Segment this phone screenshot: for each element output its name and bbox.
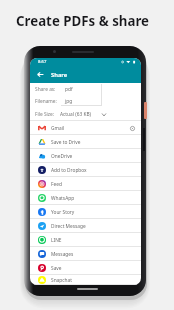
staticText: OneDrive bbox=[51, 153, 73, 160]
staticText: Share bbox=[51, 71, 68, 79]
button[interactable]: Add to Dropbox bbox=[30, 163, 141, 177]
button[interactable]: Back bbox=[34, 68, 47, 81]
staticText: Share as: bbox=[35, 86, 56, 93]
staticText: Create PDFs & share bbox=[16, 12, 150, 30]
button[interactable]: LINE bbox=[30, 233, 141, 247]
button[interactable]: Save to Drive bbox=[30, 135, 141, 149]
staticText: File Size: bbox=[35, 111, 55, 118]
staticText: WhatsApp bbox=[51, 195, 75, 202]
button[interactable]: Your Story bbox=[30, 205, 141, 219]
staticText: Messages bbox=[51, 251, 74, 258]
button[interactable]: Direct Message bbox=[30, 219, 141, 233]
staticText: Your Story bbox=[51, 209, 75, 216]
button[interactable]: WhatsApp bbox=[30, 191, 141, 205]
button[interactable]: OneDrive bbox=[30, 149, 141, 163]
button[interactable]: pdf bbox=[60, 83, 101, 105]
staticText: Gmail bbox=[51, 125, 65, 132]
staticText: Actual (63 KB) bbox=[60, 111, 91, 118]
staticText: Add to Dropbox bbox=[51, 167, 87, 174]
button[interactable]: Save bbox=[30, 261, 141, 275]
button[interactable]: Snapchat bbox=[30, 275, 141, 285]
button[interactable]: Gmail bbox=[30, 121, 141, 135]
staticText: Direct Message bbox=[51, 223, 86, 230]
button[interactable]: Messages bbox=[30, 247, 141, 261]
staticText: Filename: bbox=[35, 98, 57, 105]
staticText: pdf bbox=[65, 86, 73, 93]
staticText: Save to Drive bbox=[51, 139, 81, 146]
staticText: jpg bbox=[65, 98, 73, 105]
staticText: Snapchat bbox=[51, 277, 72, 284]
staticText: Feed bbox=[51, 181, 62, 188]
staticText: 8:57 bbox=[38, 59, 47, 65]
button[interactable]: Feed bbox=[30, 177, 141, 191]
staticText: Save bbox=[51, 265, 62, 272]
staticText: LINE bbox=[51, 237, 62, 244]
